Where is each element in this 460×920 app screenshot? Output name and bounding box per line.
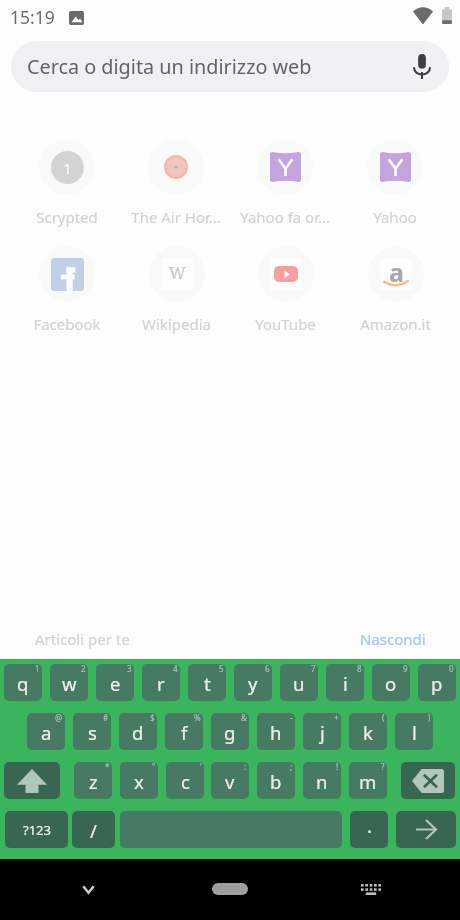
button[interactable]: The Air Hor… <box>122 139 230 231</box>
button[interactable]: j <box>303 713 341 750</box>
button[interactable]: t <box>188 664 226 701</box>
staticText: + <box>334 713 339 723</box>
button[interactable]: h <box>257 713 295 750</box>
button[interactable]: b <box>257 762 295 799</box>
staticText: Articoli per te <box>35 629 130 649</box>
staticText: n <box>316 769 328 794</box>
button[interactable]: · <box>350 811 388 848</box>
staticText: * <box>105 762 110 772</box>
button[interactable]: z <box>74 762 112 799</box>
staticText: w <box>62 671 77 696</box>
button[interactable]: d <box>119 713 157 750</box>
button[interactable]: W <box>122 246 230 338</box>
button[interactable]: Nascondi <box>360 629 426 649</box>
staticText: Amazon.it <box>360 314 431 334</box>
button[interactable]: YouTube <box>231 246 339 338</box>
staticText: 4 <box>173 664 178 674</box>
button[interactable]: n <box>303 762 341 799</box>
staticText: Yahoo fa or… <box>240 207 330 227</box>
staticText: " <box>152 762 156 772</box>
button[interactable]: o <box>372 664 410 701</box>
button[interactable]: g <box>211 713 249 750</box>
staticText: ?123 <box>23 821 51 839</box>
staticText: Yahoo <box>373 207 417 227</box>
button[interactable]: m <box>349 762 387 799</box>
staticText: Nascondi <box>360 629 426 649</box>
staticText: ) <box>428 713 431 723</box>
button[interactable]: Enter <box>396 811 456 848</box>
button[interactable]: r <box>142 664 180 701</box>
button[interactable]: Cerca o digita un indirizzo web <box>11 41 449 92</box>
staticText: Cerca o digita un indirizzo web <box>27 53 312 80</box>
staticText: : <box>244 762 247 772</box>
button[interactable]: a <box>341 246 449 338</box>
button[interactable]: p <box>418 664 456 701</box>
staticText: ! <box>336 762 339 772</box>
button[interactable]: Shift <box>4 762 60 799</box>
staticText: 1 <box>35 664 40 674</box>
button[interactable]: q <box>4 664 42 701</box>
staticText: Facebook <box>33 314 101 334</box>
button[interactable]: Yahoo fa or… <box>231 139 339 231</box>
button[interactable]: Home <box>212 883 248 895</box>
staticText: c <box>181 769 190 794</box>
staticText: v <box>225 769 235 794</box>
staticText: - <box>290 713 293 723</box>
button[interactable]: u <box>280 664 318 701</box>
staticText: r <box>157 671 165 696</box>
staticText: h <box>270 720 282 745</box>
staticText: 3 <box>127 664 132 674</box>
staticText: u <box>293 671 305 696</box>
staticText: 2 <box>81 664 86 674</box>
button[interactable]: x <box>120 762 158 799</box>
button[interactable]: Facebook <box>13 246 121 338</box>
staticText: s <box>88 720 97 745</box>
staticText: 0 <box>449 664 454 674</box>
staticText: l <box>412 720 417 745</box>
button[interactable]: c <box>166 762 204 799</box>
staticText: 8 <box>357 664 362 674</box>
button[interactable]: Backspace <box>401 762 455 799</box>
button[interactable]: i <box>326 664 364 701</box>
button[interactable]: 1 <box>13 139 121 231</box>
staticText: 5 <box>219 664 224 674</box>
button[interactable]: f <box>165 713 203 750</box>
staticText: a <box>41 720 52 745</box>
staticText: ; <box>290 762 293 772</box>
button[interactable]: Voice search <box>404 48 440 84</box>
staticText: · <box>367 818 372 843</box>
button[interactable]: Switch keyboard <box>349 867 393 911</box>
button[interactable]: Hide keyboard <box>66 867 110 911</box>
staticText: 9 <box>403 664 408 674</box>
button[interactable]: l <box>395 713 433 750</box>
staticText: ? <box>381 762 385 772</box>
button[interactable]: Yahoo <box>341 139 449 231</box>
button[interactable]: / <box>72 811 115 848</box>
staticText: 1 <box>63 158 72 178</box>
staticText: ' <box>200 762 202 772</box>
staticText: p <box>431 671 443 696</box>
staticText: q <box>17 671 29 696</box>
staticText: Wikipedia <box>142 314 211 334</box>
staticText: Scrypted <box>36 207 98 227</box>
staticText: The Air Hor… <box>131 207 221 227</box>
button[interactable]: a <box>27 713 65 750</box>
button[interactable]: v <box>211 762 249 799</box>
button[interactable]: e <box>96 664 134 701</box>
button[interactable]: w <box>50 664 88 701</box>
button[interactable]: k <box>349 713 387 750</box>
staticText: / <box>90 818 97 843</box>
staticText: $ <box>150 713 155 723</box>
staticText: j <box>320 720 325 745</box>
staticText: W <box>169 262 186 284</box>
staticText: i <box>343 671 348 696</box>
staticText: # <box>103 713 109 723</box>
staticText: z <box>89 769 98 794</box>
staticText: @ <box>55 713 63 723</box>
staticText: d <box>132 720 144 745</box>
button[interactable]: y <box>234 664 272 701</box>
button[interactable]: s <box>73 713 111 750</box>
button[interactable]: Articoli per te <box>35 629 130 649</box>
button[interactable]: ?123 <box>5 811 68 848</box>
